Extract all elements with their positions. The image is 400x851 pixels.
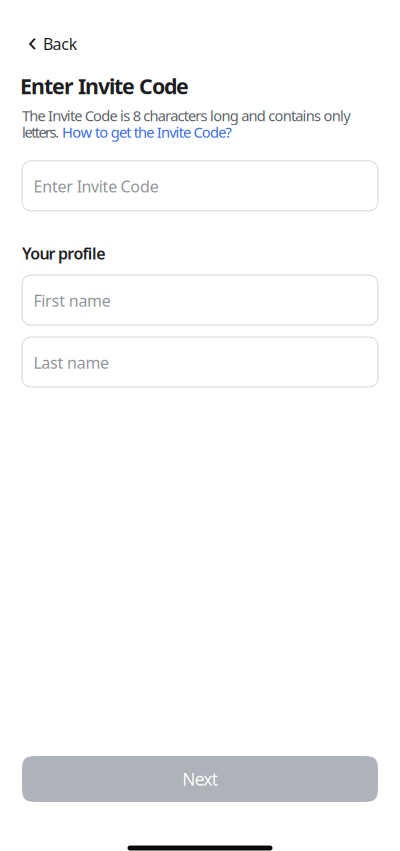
staticText: The Invite Code is 8 characters long and… [22,106,350,125]
staticText: How to get the Invite Code? [62,122,231,142]
button[interactable]: Back [0,33,120,54]
button[interactable]: Next [22,756,378,802]
staticText: Last name [33,352,109,373]
button[interactable]: How to get the Invite Code? [62,122,231,142]
button[interactable]: Last name [22,337,378,387]
staticText: Your profile [22,243,105,264]
button[interactable]: First name [22,275,378,325]
staticText: Enter Invite Code [33,176,159,197]
staticText: Next [182,767,218,790]
staticText: letters. [22,122,59,142]
button[interactable]: Enter Invite Code [22,161,378,211]
staticText: First name [33,290,111,311]
staticText: Enter Invite Code [20,72,189,100]
staticText: Back [43,33,78,54]
